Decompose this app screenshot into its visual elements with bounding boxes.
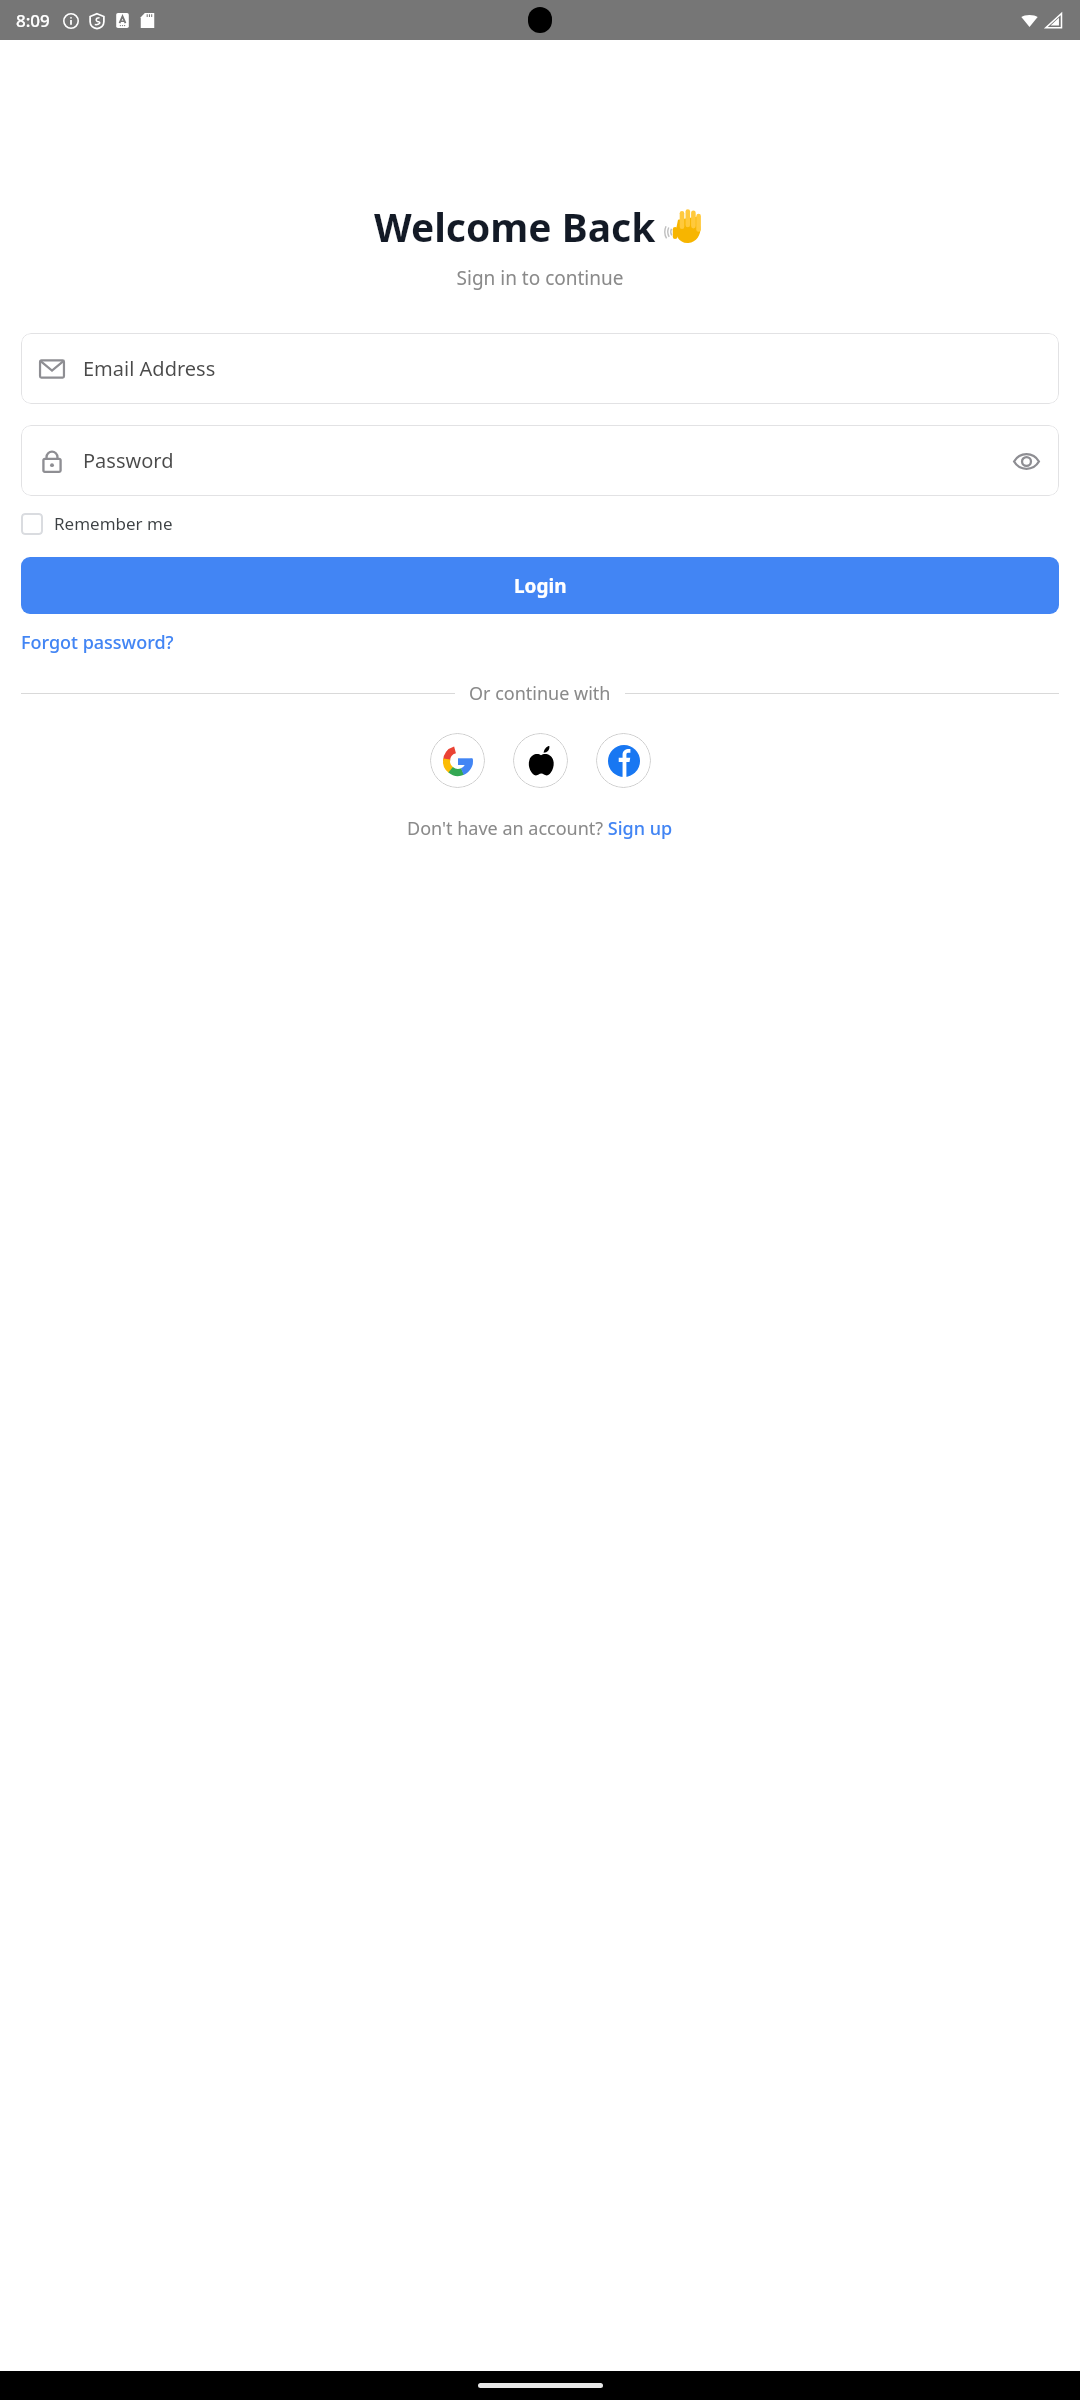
button[interactable]: Remember me	[21, 506, 173, 541]
button[interactable]: Password	[21, 425, 1059, 496]
button[interactable]: Sign in with Facebook	[596, 733, 651, 788]
staticText: Password	[83, 447, 1011, 474]
button[interactable]: Don't have an account? Sign up	[407, 816, 673, 841]
staticText: Login	[514, 573, 567, 599]
staticText: Or continue with	[469, 681, 611, 706]
button[interactable]: Login	[21, 557, 1059, 614]
staticText: Forgot password?	[21, 630, 174, 655]
staticText: Welcome Back	[374, 200, 666, 253]
button[interactable]: Show password	[1011, 446, 1041, 476]
button[interactable]: Sign in with Apple	[513, 733, 568, 788]
staticText: Don't have an account? Sign up	[407, 816, 673, 841]
button[interactable]: Sign in with Google	[430, 733, 485, 788]
button[interactable]: Forgot password?	[21, 626, 174, 659]
button[interactable]: Email Address	[21, 333, 1059, 404]
staticText: Sign in to continue	[21, 265, 1059, 291]
staticText: 8:09	[16, 9, 50, 32]
staticText: Remember me	[54, 512, 173, 535]
staticText: Email Address	[83, 355, 1041, 382]
